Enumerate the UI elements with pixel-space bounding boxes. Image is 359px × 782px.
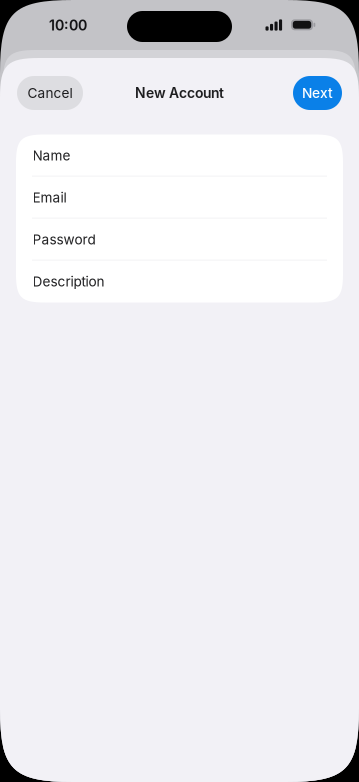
button[interactable]: Next <box>293 76 342 110</box>
staticText: Password <box>32 231 95 248</box>
staticText: Description <box>32 273 104 290</box>
button[interactable]: Email <box>16 176 343 218</box>
staticText: Cancel <box>27 85 72 101</box>
button[interactable]: Name <box>16 134 343 176</box>
staticText: Name <box>32 147 70 164</box>
staticText: New Account <box>135 85 224 101</box>
staticText: Next <box>302 85 333 101</box>
button[interactable]: Cancel <box>17 76 83 110</box>
staticText: Email <box>32 189 66 206</box>
staticText: 10:00 <box>49 17 87 34</box>
button[interactable]: Password <box>16 218 343 260</box>
button[interactable]: Description <box>16 260 343 302</box>
